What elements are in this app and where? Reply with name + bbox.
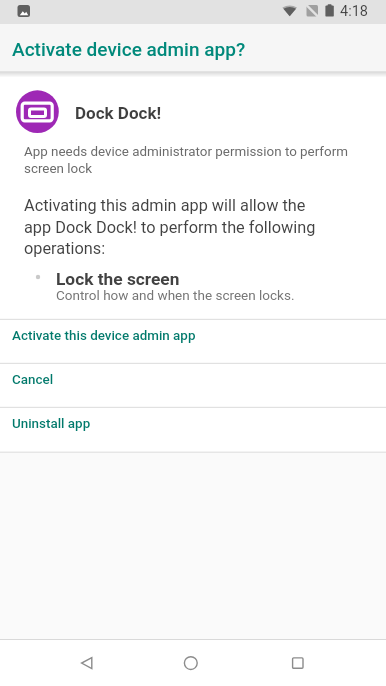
staticText: Control how and when the screen locks. <box>56 287 295 303</box>
staticText: Dock Dock! <box>75 103 162 123</box>
staticText: App needs device administrator permissio… <box>24 144 348 176</box>
staticText: Activate this device admin app <box>12 328 196 344</box>
staticText: Activating this admin app will allow the… <box>24 196 316 258</box>
staticText: Lock the screen <box>56 269 180 289</box>
staticText: Cancel <box>12 372 54 388</box>
staticText: Uninstall app <box>12 416 91 432</box>
staticText: Activate device admin app? <box>12 38 246 60</box>
staticText: 4:18 <box>340 3 368 20</box>
